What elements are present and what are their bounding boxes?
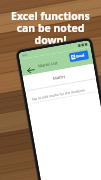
button[interactable]: Excel functions can be noted down promo <box>0 0 101 180</box>
